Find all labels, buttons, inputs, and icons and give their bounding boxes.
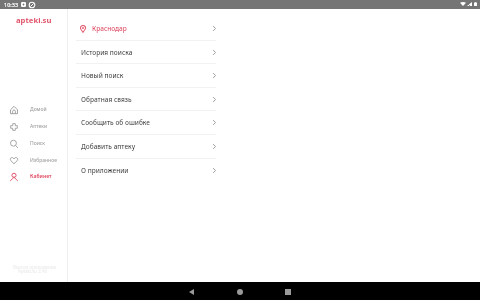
staticText: Сообщить об ошибке <box>81 118 151 127</box>
staticText: Обратная связь <box>81 95 132 104</box>
button[interactable]: Home <box>237 289 243 295</box>
button[interactable]: Account <box>0 168 67 185</box>
staticText: Кабинет <box>30 173 52 180</box>
staticText: Домой <box>30 106 47 113</box>
button[interactable]: Search <box>0 135 67 152</box>
button[interactable]: Краснодар <box>76 17 216 40</box>
other: Pharmacies <box>10 123 18 131</box>
staticText: apteki.su <box>16 15 52 25</box>
button[interactable]: О приложении <box>76 159 216 182</box>
button[interactable]: Сообщить об ошибке <box>76 111 216 134</box>
button[interactable]: Pharmacies <box>0 118 67 135</box>
staticText: О приложении <box>81 166 129 175</box>
staticText: Аптеки <box>30 123 48 130</box>
other: Search <box>10 140 18 148</box>
button[interactable]: Home <box>0 101 67 118</box>
button[interactable]: Добавить аптеку <box>76 135 216 158</box>
staticText: Добавить аптеку <box>81 142 136 151</box>
other: Favorites <box>10 157 18 164</box>
staticText: Версия приложения <box>13 264 57 270</box>
staticText: Краснодар <box>92 24 127 33</box>
staticText: История поиска <box>81 48 133 57</box>
button[interactable]: Favorites <box>0 152 67 169</box>
button[interactable]: История поиска <box>76 41 216 64</box>
button[interactable]: Обратная связь <box>76 88 216 111</box>
staticText: Apteki.su 2.46 <box>18 268 47 274</box>
other: Account <box>10 173 18 181</box>
staticText: Поиск <box>30 140 45 147</box>
button[interactable]: Back <box>189 289 194 295</box>
staticText: Избранное <box>30 157 57 164</box>
staticText: Новый поиск <box>81 71 124 80</box>
staticText: 10:33 <box>4 1 19 8</box>
button[interactable]: Новый поиск <box>76 64 216 87</box>
other: Home <box>10 106 18 114</box>
